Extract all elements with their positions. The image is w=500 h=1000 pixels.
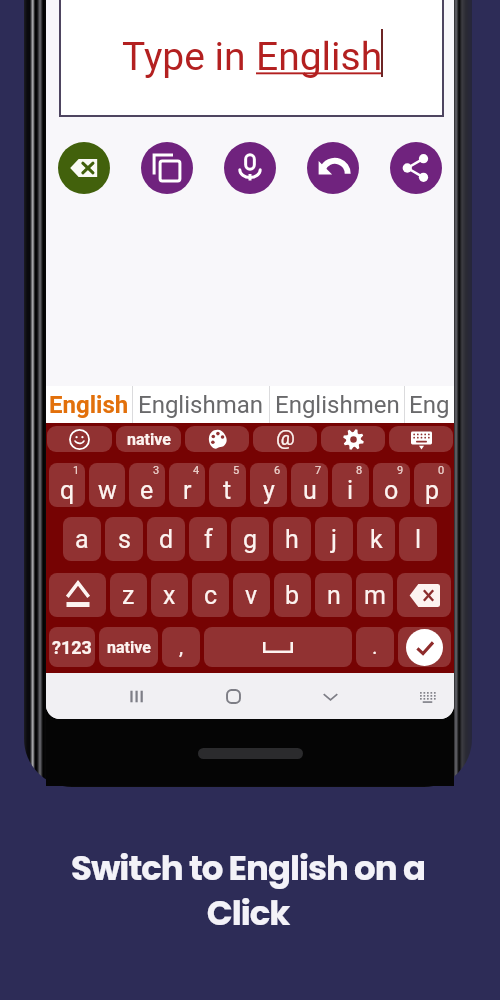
staticText: o — [384, 476, 399, 505]
button[interactable]: w — [89, 463, 125, 507]
button[interactable]: Theme — [185, 426, 249, 452]
button[interactable]: Settings — [321, 426, 385, 452]
button[interactable]: c — [192, 573, 229, 617]
button[interactable]: English — [46, 386, 132, 423]
staticText: ?123 — [52, 637, 92, 658]
button[interactable]: Backspace — [58, 142, 110, 194]
button[interactable]: Space — [204, 627, 352, 667]
button[interactable]: Englishmen — [270, 386, 404, 423]
button[interactable]: Voice input — [224, 142, 276, 194]
button[interactable]: Switch keyboard — [408, 677, 446, 715]
button[interactable]: Undo — [307, 142, 359, 194]
staticText: 8 — [356, 464, 363, 477]
staticText: 0 — [438, 464, 445, 477]
button[interactable]: k — [357, 517, 395, 561]
button[interactable]: native — [116, 426, 181, 452]
staticText: h — [285, 525, 299, 554]
button[interactable]: 7 — [291, 463, 328, 507]
button[interactable]: g — [231, 517, 269, 561]
staticText: x — [163, 581, 176, 610]
button[interactable]: Shift — [49, 573, 106, 617]
button[interactable]: Home — [214, 677, 252, 715]
button[interactable]: s — [105, 517, 143, 561]
staticText: 9 — [397, 464, 404, 477]
button[interactable]: Delete — [397, 573, 451, 617]
button[interactable]: x — [151, 573, 188, 617]
staticText: 6 — [274, 464, 281, 477]
staticText: f — [204, 525, 213, 554]
staticText: g — [243, 525, 258, 554]
button[interactable]: 9 — [373, 463, 410, 507]
button[interactable]: l — [399, 517, 437, 561]
staticText: l — [415, 525, 422, 554]
button[interactable]: z — [110, 573, 147, 617]
staticText: b — [285, 581, 300, 610]
button[interactable]: h — [273, 517, 311, 561]
button[interactable]: Share — [390, 142, 442, 194]
staticText: m — [364, 581, 386, 610]
staticText: Englishmen — [275, 391, 400, 419]
button[interactable]: , — [162, 627, 200, 667]
staticText: n — [327, 581, 341, 610]
staticText: 1 — [73, 464, 80, 477]
button[interactable]: . — [356, 627, 394, 667]
staticText: e — [140, 476, 154, 505]
button[interactable]: 0 — [414, 463, 451, 507]
staticText: s — [118, 525, 131, 554]
staticText: q — [60, 476, 75, 505]
button[interactable]: j — [315, 517, 353, 561]
button[interactable]: 6 — [250, 463, 287, 507]
button[interactable]: 4 — [169, 463, 205, 507]
staticText: 3 — [153, 464, 160, 477]
staticText: p — [425, 476, 440, 505]
staticText: d — [159, 525, 174, 554]
button[interactable]: 1 — [49, 463, 85, 507]
staticText: 7 — [315, 464, 322, 477]
staticText: Eng — [409, 391, 450, 419]
button[interactable]: Copy — [141, 142, 193, 194]
button[interactable]: f — [189, 517, 227, 561]
staticText: . — [372, 635, 378, 660]
staticText: , — [179, 635, 184, 660]
button[interactable]: Eng — [405, 386, 454, 423]
staticText: native — [127, 430, 171, 449]
button[interactable]: b — [274, 573, 311, 617]
staticText: Englishman — [138, 391, 264, 419]
button[interactable]: Englishman — [133, 386, 269, 423]
staticText: Type in — [122, 34, 256, 80]
button[interactable]: Recents — [117, 677, 155, 715]
staticText: r — [183, 476, 192, 505]
staticText: Switch to English on a Click — [58, 844, 438, 937]
staticText: native — [107, 638, 151, 657]
button[interactable]: Hide keyboard — [311, 677, 349, 715]
staticText: z — [122, 581, 135, 610]
button[interactable]: 3 — [129, 463, 165, 507]
staticText: 5 — [233, 464, 240, 477]
staticText: t — [223, 476, 232, 505]
button[interactable]: ?123 — [49, 627, 95, 667]
staticText: English — [49, 391, 129, 419]
button[interactable]: Emoji — [47, 426, 112, 452]
button[interactable]: At sign — [253, 426, 317, 452]
staticText: c — [204, 581, 218, 610]
button[interactable]: Enter — [398, 627, 451, 667]
button[interactable]: 5 — [209, 463, 246, 507]
staticText: English — [256, 34, 383, 80]
staticText: i — [347, 476, 354, 505]
staticText: k — [370, 525, 383, 554]
staticText: 4 — [193, 464, 200, 477]
button[interactable]: d — [147, 517, 185, 561]
staticText: u — [303, 476, 317, 505]
button[interactable]: m — [356, 573, 393, 617]
staticText: y — [263, 476, 275, 505]
button[interactable]: 8 — [332, 463, 369, 507]
button[interactable]: v — [233, 573, 270, 617]
staticText: w — [98, 476, 117, 505]
button[interactable]: n — [315, 573, 352, 617]
button[interactable]: a — [63, 517, 101, 561]
button[interactable]: native — [99, 627, 158, 667]
button[interactable]: Keyboard layout — [389, 426, 453, 452]
staticText: a — [75, 525, 89, 554]
staticText: v — [245, 581, 258, 610]
staticText: @ — [276, 426, 295, 451]
